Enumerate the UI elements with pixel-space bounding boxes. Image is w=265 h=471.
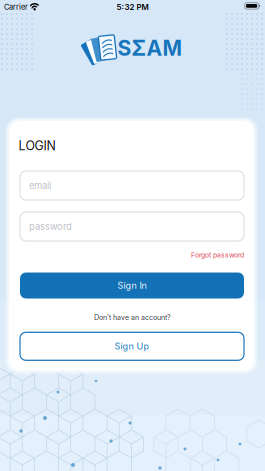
staticText: SΣAM <box>117 35 182 61</box>
button[interactable]: Sign In <box>20 272 244 298</box>
staticText: 5:32 PM <box>116 2 148 12</box>
staticText: Don't have an account? <box>94 313 171 322</box>
button[interactable]: Sign Up <box>20 332 244 360</box>
staticText: Forgot password <box>191 251 244 259</box>
button[interactable]: Forgot password <box>191 251 244 259</box>
staticText: Sign In <box>117 280 146 291</box>
staticText: password <box>29 221 72 232</box>
staticText: Carrier <box>4 2 28 11</box>
staticText: email <box>29 180 51 191</box>
staticText: Sign Up <box>114 341 149 352</box>
staticText: LOGIN <box>18 138 55 153</box>
